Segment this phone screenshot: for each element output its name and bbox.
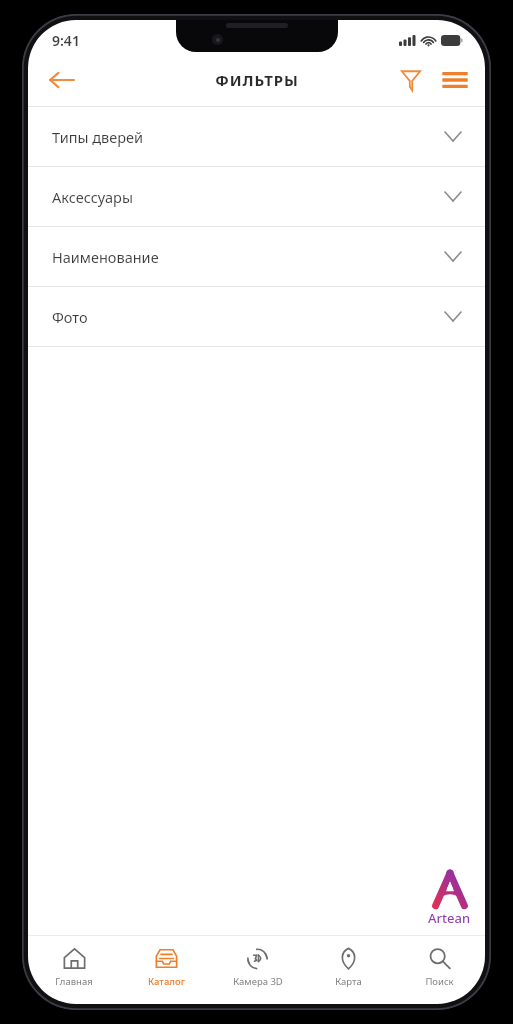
button[interactable]: Меню xyxy=(433,58,477,102)
button[interactable]: Аксессуары xyxy=(28,167,485,226)
button[interactable]: Фото xyxy=(28,287,485,346)
staticText: Каталог xyxy=(148,975,185,988)
staticText: Аксессуары xyxy=(52,187,445,207)
staticText: Камера 3D xyxy=(233,975,283,988)
staticText: Поиск xyxy=(425,975,454,988)
staticText: ФИЛЬТРЫ xyxy=(215,70,299,90)
staticText: Главная xyxy=(55,975,93,988)
button[interactable]: Главная xyxy=(28,936,120,998)
staticText: Типы дверей xyxy=(52,127,445,147)
staticText: 9:41 xyxy=(52,31,80,50)
button[interactable]: Камера 3D xyxy=(212,936,303,998)
staticText: Фото xyxy=(52,307,445,327)
button[interactable]: Карта xyxy=(303,936,394,998)
staticText: Artean xyxy=(428,909,471,927)
button[interactable]: Назад xyxy=(38,57,84,103)
staticText: Карта xyxy=(335,975,362,988)
button[interactable]: Поиск xyxy=(394,936,485,998)
button[interactable]: Типы дверей xyxy=(28,107,485,166)
staticText: Наименование xyxy=(52,247,445,267)
button[interactable]: Фильтр xyxy=(389,58,433,102)
button[interactable]: Каталог xyxy=(120,936,212,998)
button[interactable]: Наименование xyxy=(28,227,485,286)
